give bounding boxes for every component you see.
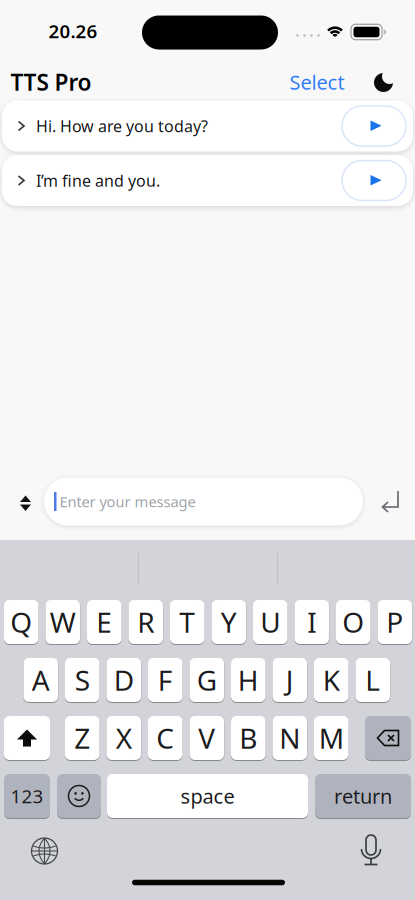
button[interactable]: Select <box>289 69 344 95</box>
button[interactable] <box>4 716 50 760</box>
staticText: X <box>116 719 132 757</box>
button[interactable]: P <box>377 600 412 644</box>
button[interactable]: N <box>272 716 307 760</box>
button[interactable]: W <box>45 600 80 644</box>
button[interactable]: O <box>336 600 370 644</box>
staticText: J <box>286 661 294 699</box>
staticText: N <box>279 719 300 757</box>
button[interactable]: Hi. How are you today? <box>2 100 413 151</box>
staticText: D <box>114 661 134 699</box>
staticText: T <box>179 603 195 641</box>
staticText: L <box>365 661 380 699</box>
button[interactable]: X <box>106 716 141 760</box>
button[interactable] <box>57 774 101 818</box>
staticText: 123 <box>10 784 43 808</box>
button[interactable]: R <box>128 600 163 644</box>
staticText: R <box>137 603 154 641</box>
button[interactable]: T <box>170 600 204 644</box>
staticText: Enter your message <box>59 492 195 511</box>
staticText: E <box>96 603 112 641</box>
button[interactable]: C <box>148 716 182 760</box>
button[interactable]: L <box>355 658 390 702</box>
button[interactable]: F <box>148 658 182 702</box>
button[interactable]: K <box>314 658 348 702</box>
button[interactable]: Z <box>65 716 99 760</box>
button[interactable]: return <box>315 774 411 818</box>
button[interactable]: Y <box>211 600 246 644</box>
staticText: U <box>260 603 280 641</box>
button[interactable]: G <box>189 658 224 702</box>
staticText: W <box>50 603 76 641</box>
staticText: H <box>238 661 259 699</box>
staticText: C <box>156 719 174 757</box>
button[interactable] <box>342 106 406 146</box>
button[interactable]: space <box>107 774 308 818</box>
staticText: TTS Pro <box>10 67 91 97</box>
button[interactable]: E <box>87 600 121 644</box>
button[interactable]: I <box>294 600 329 644</box>
staticText: Y <box>221 603 237 641</box>
staticText: K <box>323 661 340 699</box>
button[interactable]: Q <box>4 600 38 644</box>
staticText: I <box>307 603 316 641</box>
staticText: S <box>75 661 90 699</box>
button[interactable] <box>342 160 406 200</box>
button[interactable]: Enter your message <box>44 477 363 525</box>
button[interactable]: D <box>106 658 141 702</box>
staticText: O <box>342 603 364 641</box>
button[interactable] <box>373 71 395 93</box>
button[interactable]: S <box>65 658 99 702</box>
button[interactable] <box>14 490 36 516</box>
staticText: 20.26 <box>48 19 97 43</box>
button[interactable]: J <box>272 658 307 702</box>
staticText: B <box>239 719 257 757</box>
button[interactable]: V <box>189 716 224 760</box>
staticText: M <box>319 719 344 757</box>
staticText: Z <box>74 719 90 757</box>
button[interactable] <box>360 834 382 866</box>
staticText: Hi. How are you today? <box>36 115 208 137</box>
staticText: F <box>158 661 173 699</box>
button[interactable]: M <box>314 716 348 760</box>
button[interactable] <box>365 716 411 760</box>
button[interactable] <box>381 491 399 512</box>
button[interactable]: 123 <box>4 774 50 818</box>
staticText: Q <box>10 603 32 641</box>
button[interactable]: I’m fine and you. <box>2 155 413 206</box>
staticText: P <box>386 603 403 641</box>
staticText: V <box>198 719 215 757</box>
button[interactable]: U <box>253 600 287 644</box>
staticText: A <box>32 661 50 699</box>
staticText: Select <box>289 69 344 95</box>
button[interactable]: H <box>231 658 265 702</box>
staticText: return <box>334 783 392 809</box>
button[interactable]: B <box>231 716 265 760</box>
button[interactable]: A <box>23 658 58 702</box>
staticText: G <box>197 661 217 699</box>
button[interactable] <box>31 838 57 864</box>
staticText: space <box>180 783 234 809</box>
staticText: I’m fine and you. <box>36 170 160 191</box>
